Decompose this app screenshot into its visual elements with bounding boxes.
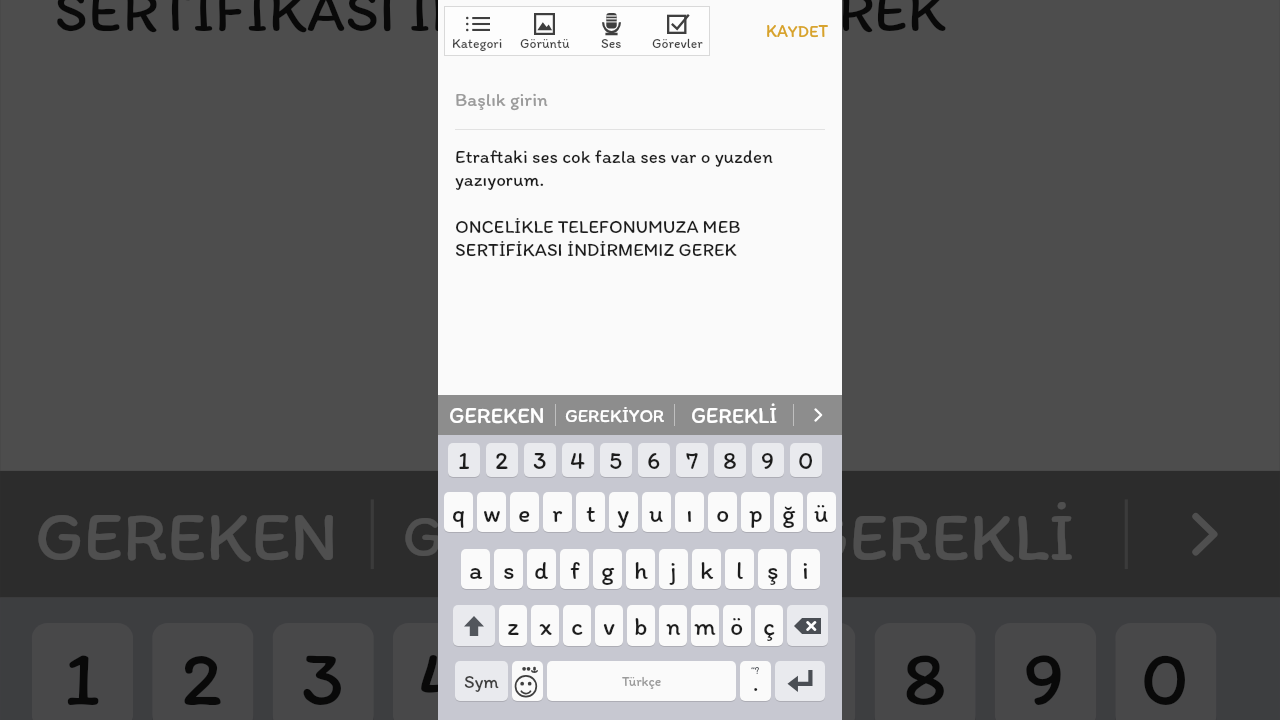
staticText: 7 [786, 629, 827, 720]
button[interactable]: p [741, 492, 770, 532]
button[interactable]: 9 [995, 623, 1096, 720]
staticText: l [736, 554, 744, 585]
button[interactable]: v [595, 605, 623, 646]
button[interactable]: More suggestions [1128, 471, 1280, 598]
button[interactable]: 9 [752, 443, 784, 477]
button[interactable]: s [494, 549, 523, 589]
button[interactable]: 5 [513, 623, 615, 720]
button[interactable]: g [593, 549, 622, 589]
button[interactable]: 4 [562, 443, 594, 477]
button[interactable]: 0 [1115, 623, 1217, 720]
staticText: Ses [601, 35, 622, 51]
button[interactable]: 8 [874, 623, 976, 720]
staticText: 1 [63, 629, 101, 720]
staticText: Etraftaki ses cok fazla ses var o yuzden… [455, 145, 825, 191]
button[interactable]: c [563, 605, 591, 646]
staticText: r [552, 497, 563, 528]
button[interactable]: 1 [448, 443, 480, 477]
staticText: a [469, 554, 483, 585]
button[interactable]: q [444, 492, 473, 532]
button[interactable]: e [510, 492, 539, 532]
button[interactable]: 7 [676, 443, 708, 477]
button[interactable]: Kategori [444, 6, 511, 56]
staticText: Görevler [652, 35, 703, 51]
button[interactable]: ç [755, 605, 783, 646]
button[interactable]: ö [723, 605, 751, 646]
button[interactable]: GEREKİYOR [556, 395, 674, 435]
staticText: 2 [495, 445, 509, 475]
button[interactable]: GEREKEN [0, 471, 371, 598]
button[interactable]: 6 [634, 623, 735, 720]
button[interactable]: Görüntü [511, 6, 578, 56]
button[interactable]: 5 [600, 443, 632, 477]
button[interactable]: n [659, 605, 687, 646]
button[interactable]: KAYDET [762, 15, 833, 48]
button[interactable]: Enter [775, 661, 825, 701]
staticText: g [601, 554, 615, 585]
button[interactable]: t [576, 492, 605, 532]
button[interactable]: 3 [272, 623, 374, 720]
button[interactable]: Ses [578, 6, 645, 56]
staticText: GEREKLİ [802, 493, 1077, 575]
staticText: ü [814, 497, 829, 528]
staticText: Türkçe [622, 673, 662, 689]
button[interactable]: 2 [486, 443, 518, 477]
staticText: GEREKİYOR [402, 499, 719, 569]
button[interactable]: GEREKLİ [751, 471, 1125, 598]
button[interactable]: j [659, 549, 688, 589]
button[interactable]: 4 [393, 623, 494, 720]
staticText: z [507, 610, 520, 641]
button[interactable]: 8 [714, 443, 746, 477]
staticText: 6 [647, 445, 661, 475]
button[interactable]: w [477, 492, 506, 532]
staticText: ı [686, 497, 693, 528]
button[interactable]: ğ [774, 492, 803, 532]
button[interactable]: l [725, 549, 754, 589]
button[interactable]: f [560, 549, 589, 589]
button[interactable]: h [626, 549, 655, 589]
button[interactable]: 3 [524, 443, 556, 477]
button[interactable]: 2 [152, 623, 253, 720]
button[interactable]: Sym [455, 661, 508, 701]
staticText: j [670, 554, 677, 585]
staticText: 9 [761, 445, 775, 475]
button[interactable]: Shift [453, 605, 495, 646]
button[interactable]: 0 [790, 443, 822, 477]
staticText: x [539, 610, 552, 641]
staticText: 3 [301, 629, 345, 720]
button[interactable]: GEREKİYOR [374, 471, 748, 598]
staticText: b [634, 610, 648, 641]
staticText: GEREKEN [449, 402, 545, 429]
button[interactable]: a [461, 549, 490, 589]
button[interactable]: ü [807, 492, 836, 532]
staticText: s [503, 554, 515, 585]
button[interactable]: o [708, 492, 737, 532]
button[interactable]: GEREKEN [438, 395, 555, 435]
staticText: 0 [1140, 629, 1191, 720]
button[interactable]: Emoji and voice input [512, 661, 543, 701]
button[interactable]: i [791, 549, 820, 589]
button[interactable]: Period [740, 661, 771, 701]
button[interactable]: z [499, 605, 527, 646]
button[interactable]: 7 [754, 623, 855, 720]
button[interactable]: x [531, 605, 559, 646]
button[interactable]: Görevler [645, 6, 710, 56]
button[interactable]: ş [758, 549, 787, 589]
button[interactable]: r [543, 492, 572, 532]
button[interactable]: u [642, 492, 671, 532]
button[interactable]: More suggestions [794, 395, 842, 435]
staticText: Kategori [452, 35, 503, 51]
button[interactable]: Türkçe [547, 661, 736, 701]
button[interactable]: ı [675, 492, 704, 532]
button[interactable]: k [692, 549, 721, 589]
button[interactable]: 6 [638, 443, 670, 477]
button[interactable]: b [627, 605, 655, 646]
button[interactable]: Backspace [787, 605, 828, 646]
button[interactable]: m [691, 605, 719, 646]
button[interactable]: GEREKLİ [675, 395, 793, 435]
staticText: 6 [662, 629, 707, 720]
button[interactable]: 1 [32, 623, 133, 720]
staticText: t [586, 497, 596, 528]
button[interactable]: y [609, 492, 638, 532]
button[interactable]: d [527, 549, 556, 589]
